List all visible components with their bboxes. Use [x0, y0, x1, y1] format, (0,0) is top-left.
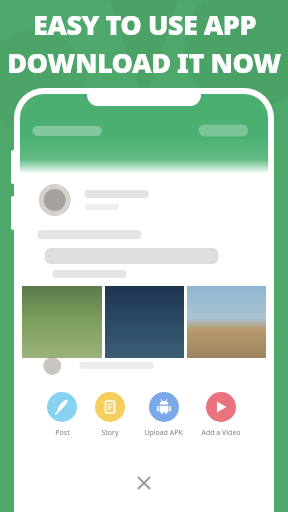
- button[interactable]: Upload APK: [142, 392, 185, 438]
- staticText: Post: [55, 428, 70, 438]
- staticText: Upload APK: [144, 428, 183, 438]
- button[interactable]: Post: [45, 392, 79, 438]
- button[interactable]: Story: [93, 392, 127, 438]
- button[interactable]: Add a Video: [199, 392, 243, 438]
- button[interactable]: Close: [20, 454, 268, 512]
- staticText: EASY TO USE APP: [33, 6, 256, 43]
- staticText: Story: [101, 428, 119, 438]
- staticText: Add a Video: [201, 428, 241, 438]
- staticText: DOWNLOAD IT NOW: [7, 44, 281, 81]
